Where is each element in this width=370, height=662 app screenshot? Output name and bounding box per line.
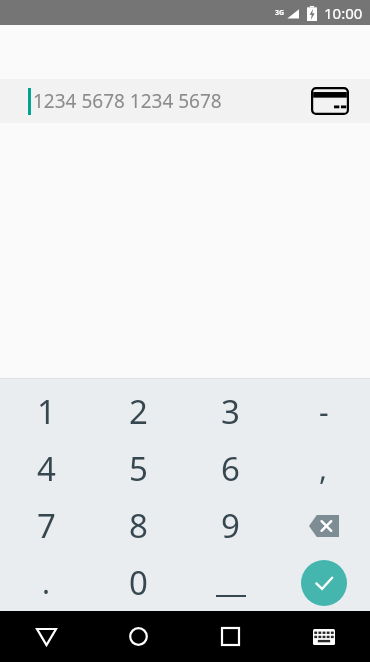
staticText: .	[42, 562, 51, 603]
staticText: 7	[37, 503, 56, 548]
button[interactable]: 6	[184, 440, 277, 497]
staticText: 8	[129, 503, 148, 548]
button[interactable]: Recent apps	[184, 611, 277, 662]
button[interactable]: 9	[184, 497, 277, 554]
button[interactable]: 8	[92, 497, 184, 554]
button[interactable]: 1	[0, 382, 92, 440]
button[interactable]: Done	[301, 560, 347, 606]
staticText: 3	[221, 389, 240, 434]
button[interactable]: 7	[0, 497, 92, 554]
staticText: -	[319, 391, 329, 432]
staticText: ,	[319, 448, 328, 489]
button[interactable]: ,	[277, 440, 370, 497]
button[interactable]: 2	[92, 382, 184, 440]
staticText: 4	[37, 446, 56, 491]
button[interactable]: Space	[184, 554, 277, 611]
button[interactable]: Home	[92, 611, 184, 662]
button[interactable]: 0	[92, 554, 184, 611]
button[interactable]: .	[0, 554, 92, 611]
button[interactable]: Back	[0, 611, 92, 662]
staticText: 1234 5678 1234 5678	[33, 88, 222, 114]
staticText: 2	[129, 389, 148, 434]
button[interactable]: 1234 5678 1234 5678	[0, 79, 370, 123]
staticText: 5	[129, 446, 148, 491]
button[interactable]: Backspace	[277, 497, 370, 554]
staticText: 1	[37, 389, 56, 434]
button[interactable]: 4	[0, 440, 92, 497]
staticText: 0	[129, 560, 148, 605]
staticText: 10:00	[324, 3, 363, 23]
staticText: 3G	[275, 8, 285, 18]
button[interactable]: -	[277, 382, 370, 440]
staticText: 6	[221, 446, 240, 491]
button[interactable]: 3	[184, 382, 277, 440]
staticText: 9	[221, 503, 240, 548]
button[interactable]: 5	[92, 440, 184, 497]
button[interactable]: Card scanner	[308, 79, 352, 123]
button[interactable]: Switch keyboard	[277, 611, 370, 662]
